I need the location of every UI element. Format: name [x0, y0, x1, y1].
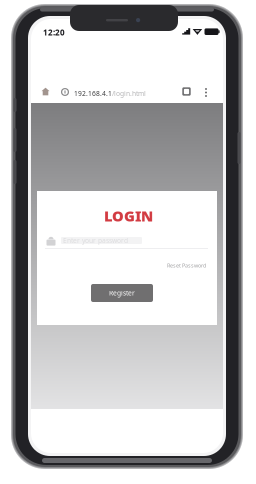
button[interactable]: 192.168.4.1	[74, 85, 146, 102]
button[interactable]: More options	[201, 84, 211, 101]
button[interactable]: Reset Password	[165, 260, 208, 271]
staticText: /login.html	[112, 89, 146, 98]
staticText: Register	[109, 289, 135, 297]
staticText: Reset Password	[167, 262, 206, 269]
button[interactable]: Register	[91, 284, 153, 302]
staticText: Enter your password	[63, 236, 128, 245]
staticText: LOGIN	[104, 206, 153, 225]
staticText: 192.168.4.1	[74, 89, 112, 98]
button[interactable]: Tabs	[179, 84, 194, 99]
staticText: 12:20	[43, 27, 65, 38]
button[interactable]: Home	[38, 84, 53, 99]
